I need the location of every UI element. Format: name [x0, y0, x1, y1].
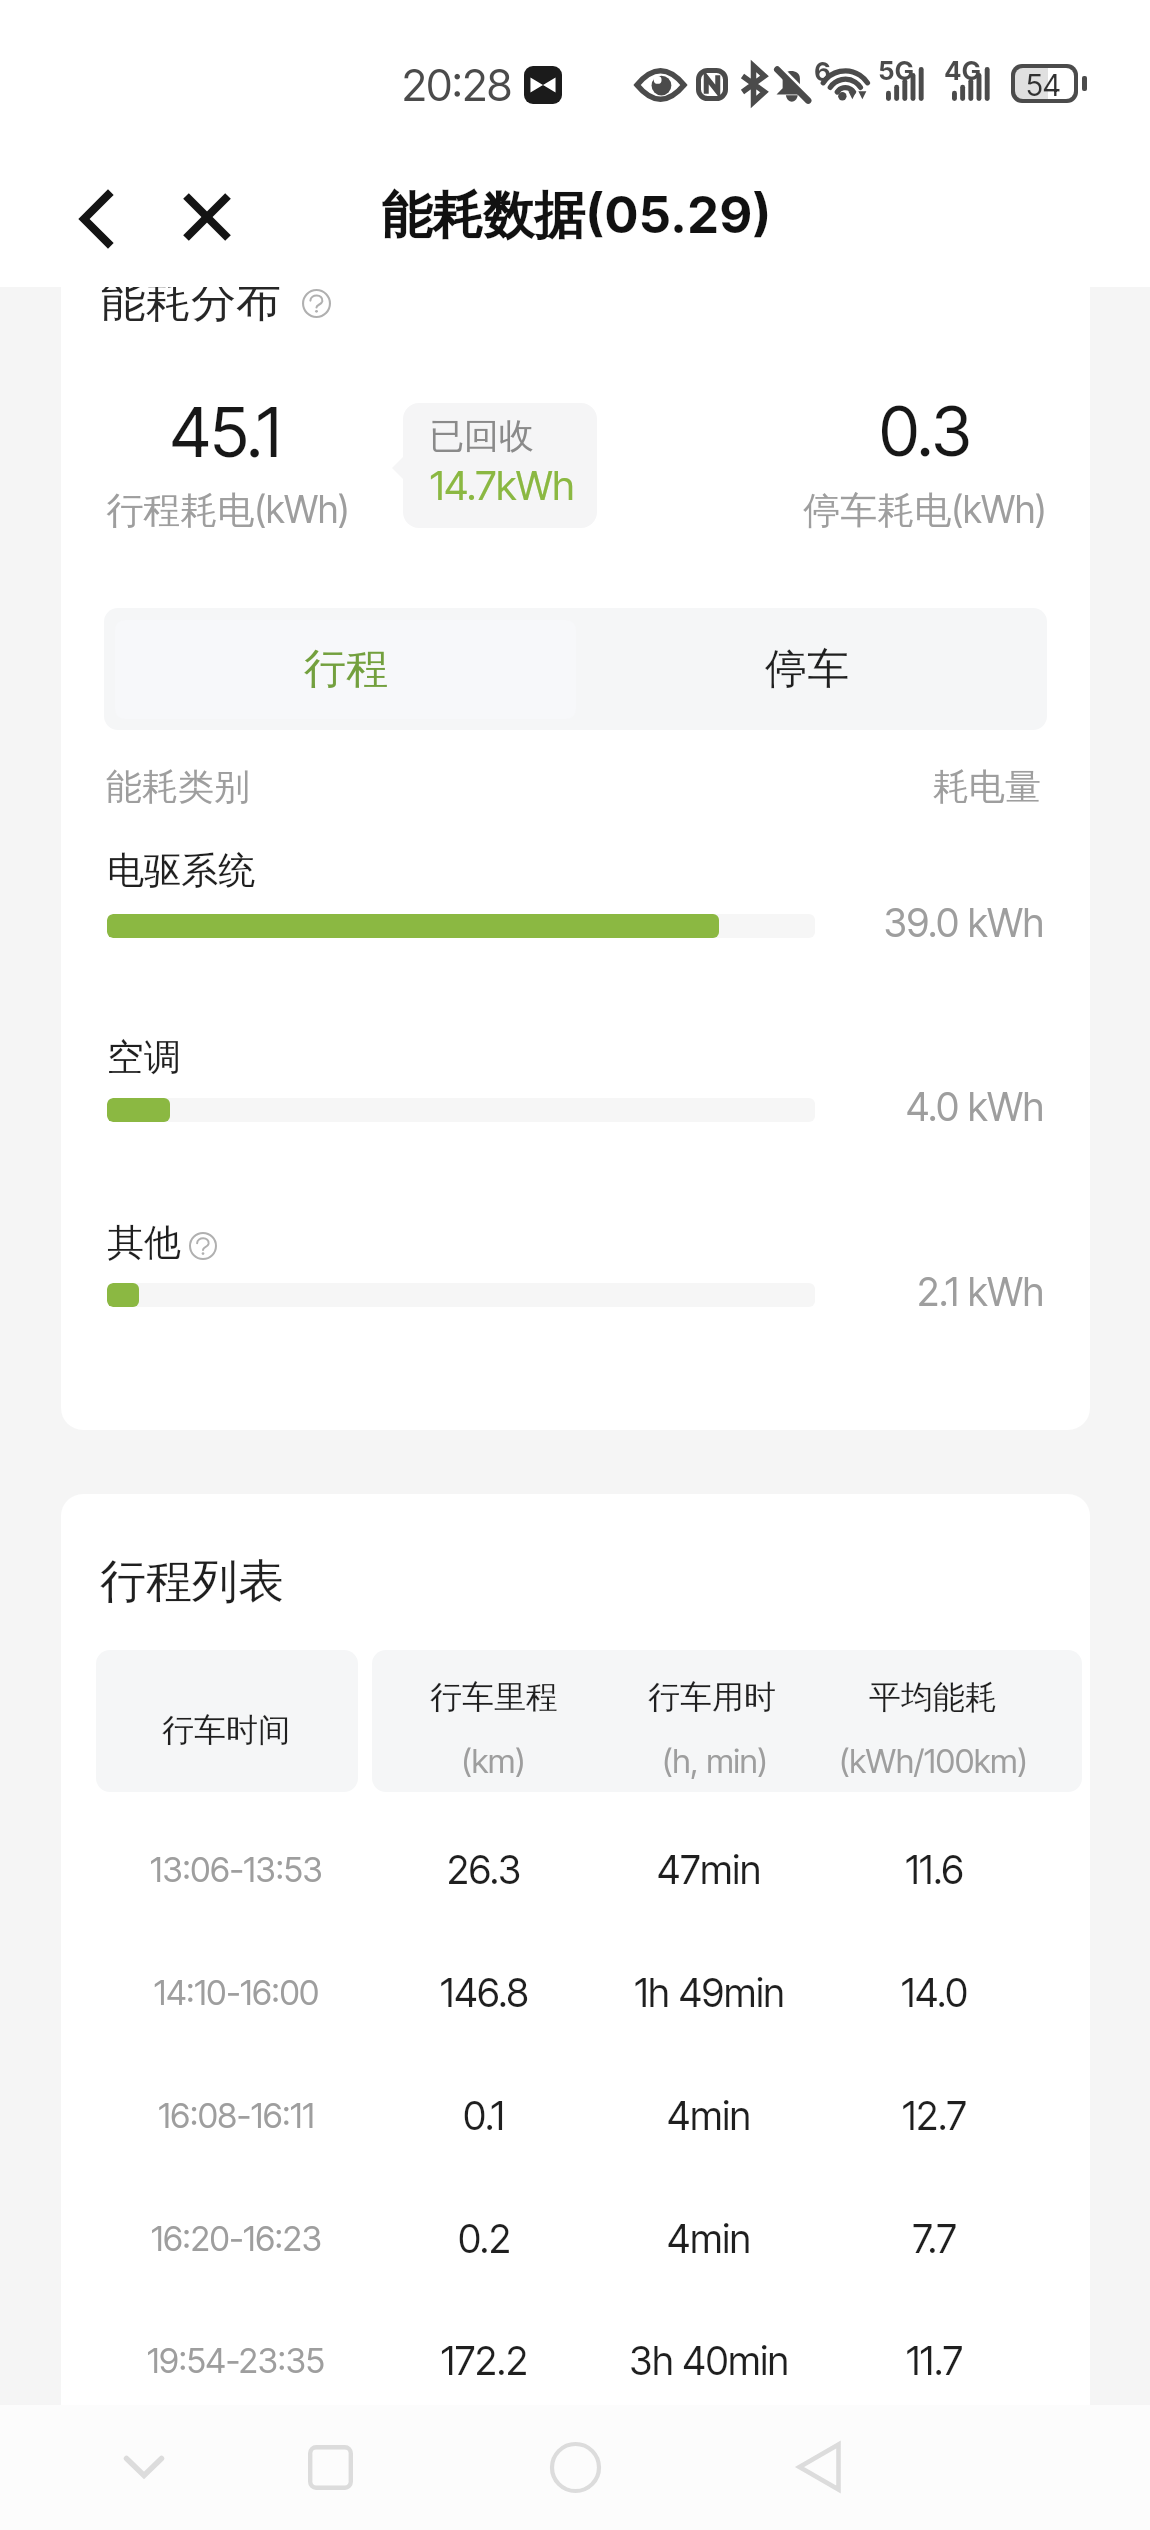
staticText: 20:28	[402, 58, 512, 111]
staticText: 11.7	[906, 2337, 963, 2384]
staticText: 16:20-16:23	[151, 2218, 322, 2259]
staticText: 3h 40min	[629, 2337, 789, 2384]
staticText: (kWh/100km)	[839, 1741, 1028, 1781]
button[interactable]: 16:20-16:23	[61, 2178, 1090, 2300]
staticText: 停车耗电(kWh)	[803, 487, 1047, 534]
button[interactable]: 19:54-23:35	[61, 2300, 1090, 2405]
staticText: 能耗数据(05.29)	[381, 184, 772, 249]
staticText: 172.2	[441, 2337, 528, 2384]
staticText: 4.0 kWh	[906, 1083, 1044, 1130]
staticText: 16:08-16:11	[158, 2095, 315, 2136]
staticText: 空调	[107, 1034, 181, 1081]
staticText: 4min	[667, 2215, 751, 2262]
staticText: 6	[814, 56, 831, 87]
staticText: 14.0	[901, 1969, 968, 2016]
staticText: 行程	[304, 643, 388, 696]
staticText: 1h 49min	[634, 1969, 785, 2016]
staticText: 行车里程	[430, 1677, 558, 1717]
button[interactable]: Home	[520, 2412, 630, 2522]
staticText: 39.0 kWh	[883, 899, 1044, 946]
staticText: 行车用时	[648, 1677, 776, 1717]
button[interactable]: 14:10-16:00	[61, 1932, 1090, 2054]
staticText: 45.1	[170, 391, 281, 473]
staticText: 0.1	[463, 2092, 505, 2139]
staticText: 4min	[667, 2092, 751, 2139]
staticText: 0.2	[458, 2215, 511, 2262]
button[interactable]: Recents	[275, 2412, 385, 2522]
staticText: 47min	[657, 1846, 761, 1893]
button[interactable]	[96, 1650, 358, 1792]
staticText: 146.8	[440, 1969, 529, 2016]
button[interactable]: 16:08-16:11	[61, 2055, 1090, 2177]
staticText: 54	[1026, 67, 1061, 103]
button[interactable]: Back	[764, 2412, 874, 2522]
staticText: 2.1 kWh	[917, 1268, 1044, 1315]
staticText: 0.3	[879, 390, 972, 472]
staticText: 其他	[107, 1219, 181, 1266]
staticText: 行程耗电(kWh)	[106, 487, 350, 534]
staticText: 14.7kWh	[430, 461, 575, 509]
button[interactable]: Back	[57, 179, 133, 259]
staticText: 能耗类别	[106, 764, 250, 809]
button[interactable]: 停车	[575, 608, 1047, 730]
staticText: 平均能耗	[869, 1677, 997, 1717]
staticText: 7.7	[912, 2215, 957, 2262]
button[interactable]: Close	[167, 177, 247, 257]
staticText: 12.7	[902, 2092, 967, 2139]
staticText: (h, min)	[662, 1741, 768, 1781]
button[interactable]: 13:06-13:53	[61, 1809, 1090, 1931]
staticText: 耗电量	[933, 764, 1041, 809]
staticText: 11.6	[905, 1846, 964, 1893]
staticText: 5G	[878, 55, 915, 86]
staticText: (km)	[461, 1741, 526, 1781]
staticText: 停车	[765, 643, 849, 696]
staticText: 能耗分布	[101, 287, 281, 330]
staticText: 行车时间	[162, 1710, 290, 1750]
button[interactable]: 行程	[104, 608, 575, 730]
staticText: 19:54-23:35	[147, 2340, 325, 2381]
staticText: 14:10-16:00	[154, 1972, 319, 2013]
staticText: 26.3	[447, 1846, 521, 1893]
staticText: 13:06-13:53	[150, 1849, 323, 1890]
button[interactable]: Hide	[89, 2412, 199, 2522]
staticText: 已回收	[429, 414, 534, 458]
staticText: 电驱系统	[107, 847, 255, 894]
staticText: 行程列表	[100, 1553, 284, 1611]
staticText: 4G	[944, 55, 982, 86]
